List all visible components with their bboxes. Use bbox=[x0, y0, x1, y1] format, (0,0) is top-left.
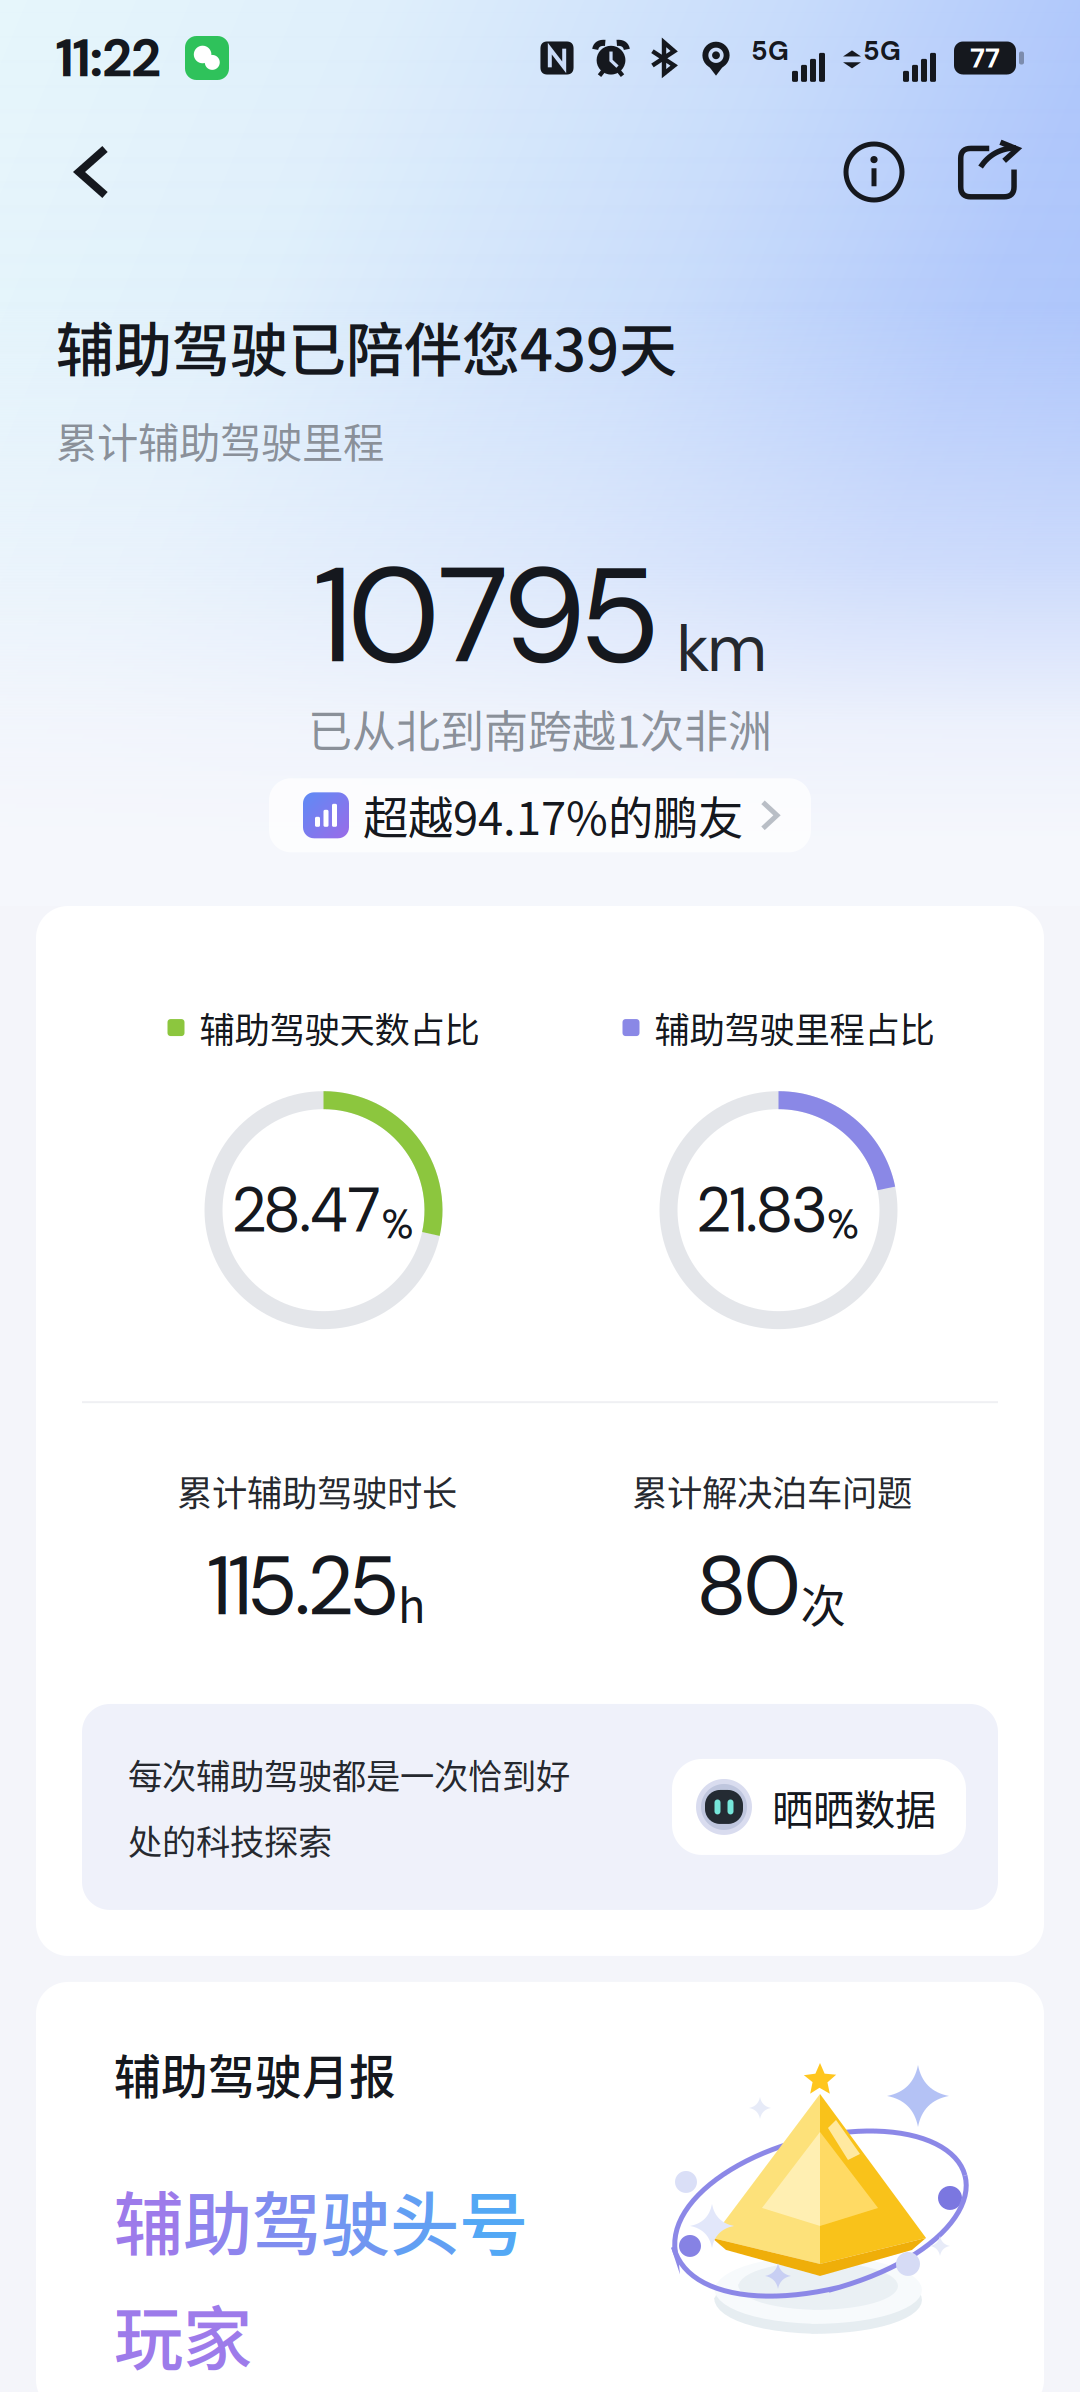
button[interactable]: Information bbox=[830, 128, 918, 216]
staticText: 5G bbox=[751, 34, 789, 68]
staticText: 累计辅助驾驶时长 bbox=[177, 1465, 457, 1516]
staticText: 助 bbox=[183, 2169, 252, 2270]
staticText: 辅助驾驶里程占比 bbox=[654, 1002, 934, 1053]
staticText: 超越94.17%的鹏友 bbox=[363, 782, 743, 848]
button[interactable]: 晒晒数据 bbox=[672, 1759, 966, 1855]
staticText: 累计辅助驾驶里程 bbox=[56, 410, 384, 470]
staticText: 5G bbox=[863, 34, 901, 68]
staticText: 辅助驾驶天数占比 bbox=[199, 1002, 479, 1053]
staticText: 次 bbox=[800, 1570, 845, 1636]
staticText: 驶 bbox=[321, 2169, 390, 2270]
button[interactable]: 超越94.17%的鹏友 bbox=[269, 778, 811, 852]
staticText: 辅助驾驶月报 bbox=[114, 2040, 396, 2108]
staticText: km bbox=[678, 605, 765, 692]
staticText: 驾 bbox=[252, 2169, 321, 2270]
staticText: 11:22 bbox=[56, 23, 161, 93]
staticText: 玩 bbox=[114, 2284, 183, 2384]
staticText: 处的科技探索 bbox=[128, 1815, 332, 1865]
staticText: 每次辅助驾驶都是一次恰到好 bbox=[128, 1749, 570, 1799]
staticText: 80 bbox=[698, 1532, 799, 1640]
staticText: 21.83 bbox=[698, 1169, 826, 1251]
staticText: 已从北到南跨越1次非洲 bbox=[308, 697, 772, 760]
staticText: % bbox=[381, 1197, 413, 1251]
staticText: h bbox=[398, 1570, 426, 1636]
button[interactable]: Back bbox=[48, 128, 136, 216]
staticText: 115.25 bbox=[208, 1532, 397, 1640]
staticText: 辅 bbox=[114, 2169, 183, 2270]
staticText: 头 bbox=[390, 2169, 459, 2270]
staticText: 28.47 bbox=[233, 1169, 380, 1251]
button[interactable]: Share bbox=[944, 128, 1032, 216]
staticText: 晒晒数据 bbox=[772, 1777, 936, 1837]
staticText: 累计解决泊车问题 bbox=[632, 1465, 912, 1516]
staticText: 77 bbox=[970, 40, 1000, 76]
staticText: 家 bbox=[183, 2284, 252, 2384]
staticText: % bbox=[827, 1197, 859, 1251]
staticText: 号 bbox=[459, 2169, 528, 2270]
staticText: 10795 bbox=[315, 529, 656, 703]
staticText: 辅助驾驶已陪伴您439天 bbox=[56, 304, 677, 388]
